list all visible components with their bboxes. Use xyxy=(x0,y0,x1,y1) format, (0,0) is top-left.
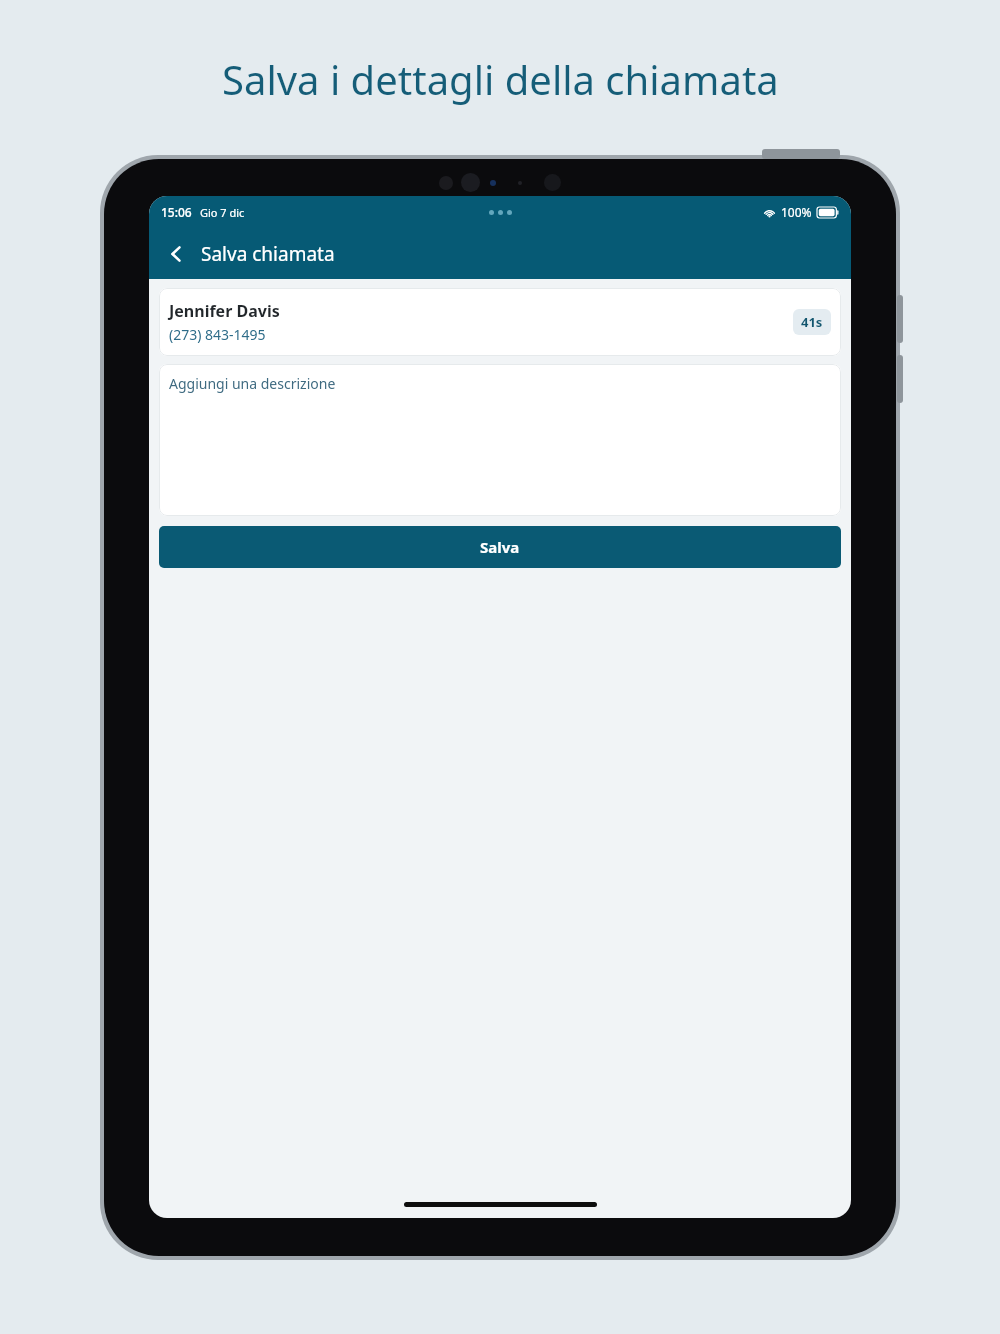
button[interactable]: Back xyxy=(159,237,193,271)
staticText: Salva i dettagli della chiamata xyxy=(222,52,779,106)
staticText: Salva chiamata xyxy=(201,241,335,267)
staticText: (273) 843-1495 xyxy=(169,325,266,344)
staticText: Salva xyxy=(480,537,520,557)
button[interactable]: Aggiungi una descrizione xyxy=(159,364,841,516)
staticText: 15:06 xyxy=(161,204,192,220)
staticText: 100% xyxy=(781,204,812,220)
staticText: Jennifer Davis xyxy=(169,300,280,322)
staticText: Aggiungi una descrizione xyxy=(169,374,336,393)
button[interactable]: Salva xyxy=(159,526,841,568)
button[interactable]: Jennifer Davis xyxy=(159,288,841,356)
staticText: Gio 7 dic xyxy=(200,205,245,220)
staticText: 41s xyxy=(801,313,823,331)
